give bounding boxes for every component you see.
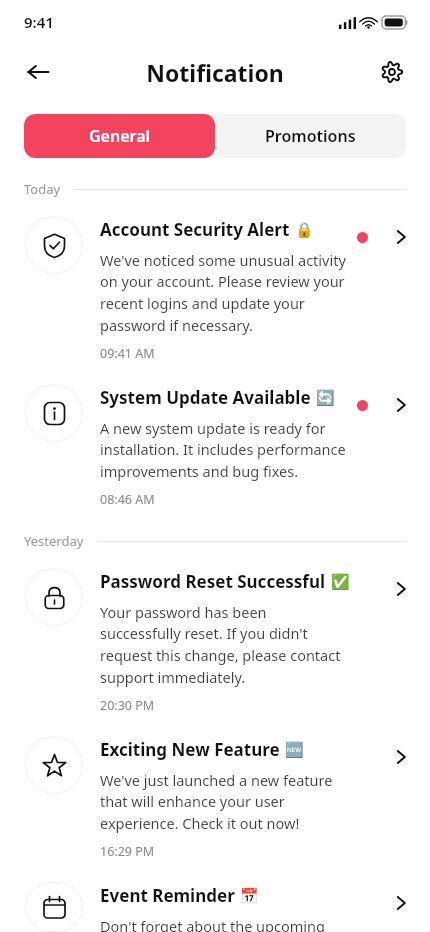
button[interactable]: System Update Available [0, 384, 430, 508]
staticText: Don't forget about the upcoming event to… [100, 916, 350, 932]
button[interactable]: General [24, 114, 215, 158]
staticText: General [89, 125, 151, 147]
button[interactable]: Exciting New Feature [0, 736, 430, 860]
staticText: 🔄 [316, 389, 335, 407]
button[interactable]: Back [14, 48, 62, 96]
staticText: 20:30 PM [100, 697, 155, 714]
staticText: 🆕 [285, 741, 304, 759]
staticText: 09:41 AM [100, 345, 155, 362]
button[interactable]: Open [390, 226, 412, 248]
staticText: System Update Available [100, 386, 311, 409]
button[interactable]: Settings [368, 48, 416, 96]
button[interactable]: Password Reset Successful [0, 568, 430, 714]
staticText: Event Reminder [100, 884, 235, 907]
staticText: 08:46 AM [100, 491, 155, 508]
staticText: A new system update is ready for install… [100, 418, 350, 482]
staticText: 🔒 [295, 221, 314, 239]
button[interactable]: Account Security Alert [0, 216, 430, 362]
staticText: Account Security Alert [100, 218, 290, 241]
staticText: 16:29 PM [100, 843, 155, 860]
staticText: Notification [146, 57, 284, 88]
staticText: ✅ [331, 573, 350, 591]
staticText: We've just launched a new feature that w… [100, 770, 350, 834]
staticText: Your password has been successfully rese… [100, 602, 350, 688]
staticText: Exciting New Feature [100, 738, 280, 761]
staticText: 📅 [240, 887, 259, 905]
button[interactable]: Open [390, 892, 412, 914]
staticText: 9:41 [24, 12, 54, 32]
staticText: Today [24, 180, 61, 198]
staticText: We've noticed some unusual activity on y… [100, 250, 350, 336]
button[interactable]: Open [390, 578, 412, 600]
button[interactable]: Open [390, 394, 412, 416]
button[interactable]: Open [390, 746, 412, 768]
button[interactable]: Event Reminder [0, 882, 430, 932]
staticText: Password Reset Successful [100, 570, 326, 593]
staticText: Promotions [265, 125, 356, 147]
button[interactable]: Promotions [215, 114, 406, 158]
staticText: Yesterday [24, 532, 84, 550]
